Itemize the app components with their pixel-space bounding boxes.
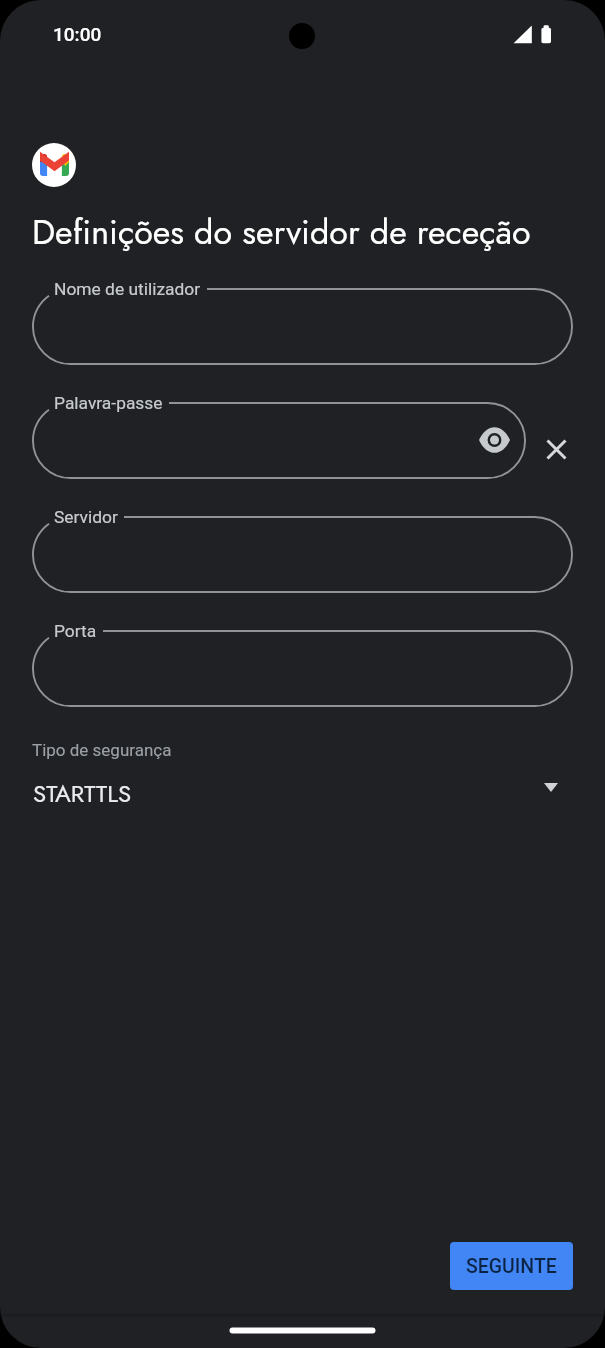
staticText: Porta — [54, 621, 97, 641]
button[interactable] — [32, 516, 573, 593]
staticText: Palavra-passe — [54, 393, 163, 413]
button[interactable]: Limpar — [533, 426, 580, 473]
staticText: Nome de utilizador — [54, 279, 201, 299]
staticText: 10:00 — [53, 23, 102, 45]
staticText: Servidor — [54, 507, 118, 527]
button[interactable] — [32, 402, 526, 479]
button[interactable]: SEGUINTE — [450, 1242, 573, 1290]
button[interactable]: Tipo de segurança — [0, 735, 605, 820]
button[interactable] — [32, 288, 573, 365]
button[interactable]: Mostrar palavra-passe — [470, 416, 518, 464]
staticText: STARTTLS — [33, 776, 132, 811]
staticText: Tipo de segurança — [32, 740, 172, 760]
staticText: Definições do servidor de receção — [32, 208, 531, 257]
button[interactable] — [32, 630, 573, 707]
staticText: SEGUINTE — [466, 1255, 557, 1278]
